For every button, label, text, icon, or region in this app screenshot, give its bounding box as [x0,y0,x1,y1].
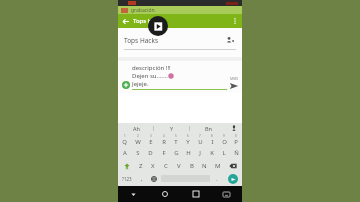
button[interactable]: Send message [223,172,242,185]
staticText: Tops Hacks [133,17,228,25]
staticText: N [202,162,207,170]
button[interactable]: D [144,146,157,159]
button[interactable]: F [157,146,170,159]
button[interactable]: S [131,146,144,159]
staticText: R [162,138,166,146]
button[interactable]: Ñ [230,146,242,159]
button[interactable]: Voice input [226,123,242,133]
button[interactable]: 0 [230,133,242,146]
button[interactable]: 4 [157,133,170,146]
button[interactable]: Z [135,159,147,172]
staticText: T [174,138,178,146]
staticText: G [174,149,179,157]
button[interactable]: 7 [194,133,206,146]
staticText: Bn [205,125,212,132]
staticText: J [199,149,201,157]
staticText: B [190,162,194,170]
button[interactable]: Send [229,76,239,91]
button[interactable]: K [206,146,218,159]
staticText: H [186,149,191,157]
staticText: W [135,138,141,146]
staticText: Y [170,125,174,132]
staticText: 4 [163,134,165,138]
button[interactable]: 3 [144,133,157,146]
staticText: Z [139,162,143,170]
button[interactable]: 8 [206,133,218,146]
button[interactable]: X [147,159,159,172]
staticText: 1 [124,134,126,138]
button[interactable]: Back [118,14,132,28]
staticText: P [234,138,238,146]
button[interactable]: Recent apps [180,186,211,202]
button[interactable]: C [159,159,172,172]
button[interactable]: More options [228,14,242,28]
staticText: U [198,138,203,146]
button[interactable]: 1 [118,133,131,146]
button[interactable]: Add person [224,34,236,46]
button[interactable]: 9 [218,133,230,146]
button[interactable]: Shift [118,159,135,172]
button[interactable]: A [118,146,131,159]
button[interactable]: Keyboard layout [211,186,242,202]
staticText: Q [122,138,127,146]
button[interactable]: Add attachment [120,79,132,91]
staticText: Y [186,138,190,146]
button[interactable]: G [170,146,182,159]
staticText: Jejeje. [132,80,149,88]
staticText: MMS [230,76,239,81]
staticText: D [148,149,153,157]
staticText: 9 [223,134,225,138]
button[interactable]: ?123 [118,172,136,185]
staticText: Dejen su....... [132,72,168,80]
staticText: 0 [235,134,237,138]
button[interactable]: . [211,172,223,185]
staticText: Ñ [234,149,239,157]
staticText: , [141,175,143,183]
button[interactable]: N [198,159,211,172]
button[interactable]: Hide keyboard [118,186,149,202]
staticText: L [222,149,226,157]
staticText: grabación. [131,7,156,14]
button[interactable]: Bn [190,123,226,133]
staticText: A [123,149,127,157]
button[interactable]: Ah [118,123,154,133]
staticText: C [164,162,168,170]
staticText: 5 [175,134,177,138]
button[interactable]: H [182,146,194,159]
staticText: 3 [150,134,152,138]
staticText: 6 [187,134,189,138]
staticText: ?123 [122,176,132,182]
staticText: E [149,138,153,146]
button[interactable]: J [194,146,206,159]
staticText: . [216,175,218,183]
button[interactable]: , [136,172,148,185]
staticText: I [211,138,214,146]
button[interactable]: 5 [170,133,182,146]
staticText: descripción !!! [132,64,171,72]
button[interactable]: M [211,159,224,172]
button[interactable]: Change language [148,172,160,185]
button[interactable]: 2 [131,133,144,146]
button[interactable]: grabación. [118,6,242,14]
staticText: Ah [133,125,140,132]
button[interactable]: B [185,159,198,172]
button[interactable]: 6 [182,133,194,146]
staticText: O [222,138,227,146]
button[interactable]: Y [154,123,190,133]
button[interactable]: L [218,146,230,159]
button[interactable]: Play recording [148,16,168,36]
staticText: V [177,162,181,170]
staticText: S [136,149,140,157]
button[interactable]: V [172,159,185,172]
staticText: 7 [199,134,201,138]
button[interactable]: Backspace [224,159,242,172]
staticText: F [162,149,166,157]
staticText: M [215,162,221,170]
staticText: 8 [211,134,213,138]
staticText: 2 [137,134,139,138]
staticText: X [151,162,155,170]
staticText: Tops Hacks [124,36,224,45]
staticText: K [210,149,214,157]
button[interactable]: Home [149,186,180,202]
